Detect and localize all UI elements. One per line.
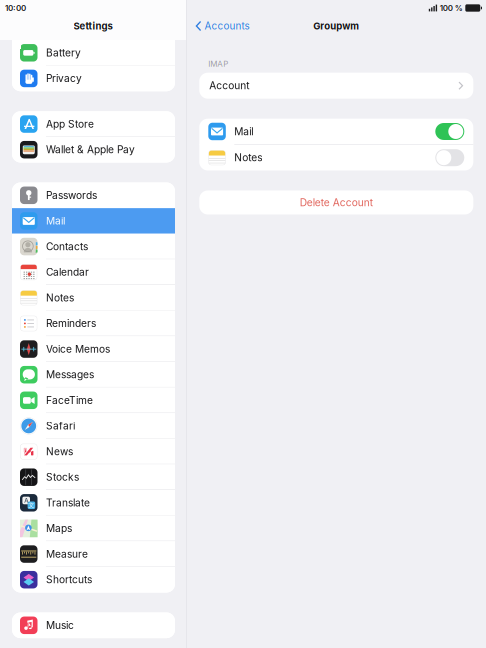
- button[interactable]: Battery: [12, 40, 175, 66]
- button[interactable]: Measure: [12, 541, 175, 567]
- button[interactable]: App Store: [12, 111, 175, 137]
- button[interactable]: Privacy: [12, 66, 175, 91]
- staticText: Contacts: [46, 240, 88, 253]
- staticText: Shortcuts: [46, 574, 92, 586]
- button[interactable]: News: [12, 439, 175, 464]
- staticText: Mail: [234, 125, 253, 138]
- staticText: News: [46, 445, 73, 458]
- button[interactable]: Mail: [12, 208, 175, 234]
- staticText: Measure: [46, 548, 88, 560]
- staticText: Settings: [73, 20, 112, 32]
- button[interactable]: Stocks: [12, 464, 175, 490]
- button[interactable]: Delete Account: [199, 190, 473, 214]
- staticText: Delete Account: [300, 196, 373, 209]
- staticText: Notes: [234, 151, 262, 164]
- staticText: IMAP: [208, 59, 228, 69]
- button[interactable]: FaceTime: [12, 387, 175, 413]
- button[interactable]: Voice Memos: [12, 336, 175, 362]
- staticText: Accounts: [204, 20, 249, 32]
- button[interactable]: Wallet & Apple Pay: [12, 137, 175, 162]
- button[interactable]: Account: [199, 73, 473, 99]
- button[interactable]: Safari: [12, 413, 175, 439]
- staticText: Notes: [46, 292, 74, 304]
- staticText: Battery: [46, 47, 81, 59]
- staticText: Groupwm: [313, 20, 359, 32]
- staticText: Privacy: [46, 72, 82, 85]
- button[interactable]: Shortcuts: [12, 567, 175, 592]
- button[interactable]: Passwords: [12, 182, 175, 208]
- staticText: Voice Memos: [46, 343, 110, 355]
- button[interactable]: Maps: [12, 516, 175, 541]
- button[interactable]: Notes: [12, 285, 175, 311]
- staticText: Maps: [46, 522, 72, 535]
- staticText: Translate: [46, 497, 90, 509]
- button[interactable]: Music: [12, 612, 175, 638]
- staticText: 100 %: [440, 3, 463, 13]
- button[interactable]: Accounts: [187, 16, 257, 40]
- staticText: FaceTime: [46, 394, 93, 406]
- staticText: Calendar: [46, 266, 89, 278]
- button[interactable]: Toggle Mail: [435, 123, 464, 140]
- staticText: Wallet & Apple Pay: [46, 144, 135, 156]
- staticText: Messages: [46, 369, 94, 381]
- staticText: 10:00: [5, 3, 26, 13]
- staticText: Safari: [46, 420, 75, 432]
- button[interactable]: A: [12, 490, 175, 516]
- staticText: A: [24, 497, 28, 504]
- button[interactable]: Calendar: [12, 259, 175, 285]
- staticText: App Store: [46, 118, 94, 130]
- button[interactable]: Messages: [12, 362, 175, 387]
- staticText: Passwords: [46, 189, 97, 201]
- staticText: Stocks: [46, 471, 79, 483]
- button[interactable]: Toggle Notes: [435, 149, 464, 166]
- button[interactable]: Reminders: [12, 311, 175, 336]
- staticText: Reminders: [46, 317, 96, 330]
- staticText: Account: [209, 79, 249, 92]
- staticText: Music: [46, 619, 74, 631]
- staticText: 文: [28, 501, 34, 509]
- button[interactable]: Contacts: [12, 234, 175, 259]
- staticText: Mail: [46, 215, 65, 227]
